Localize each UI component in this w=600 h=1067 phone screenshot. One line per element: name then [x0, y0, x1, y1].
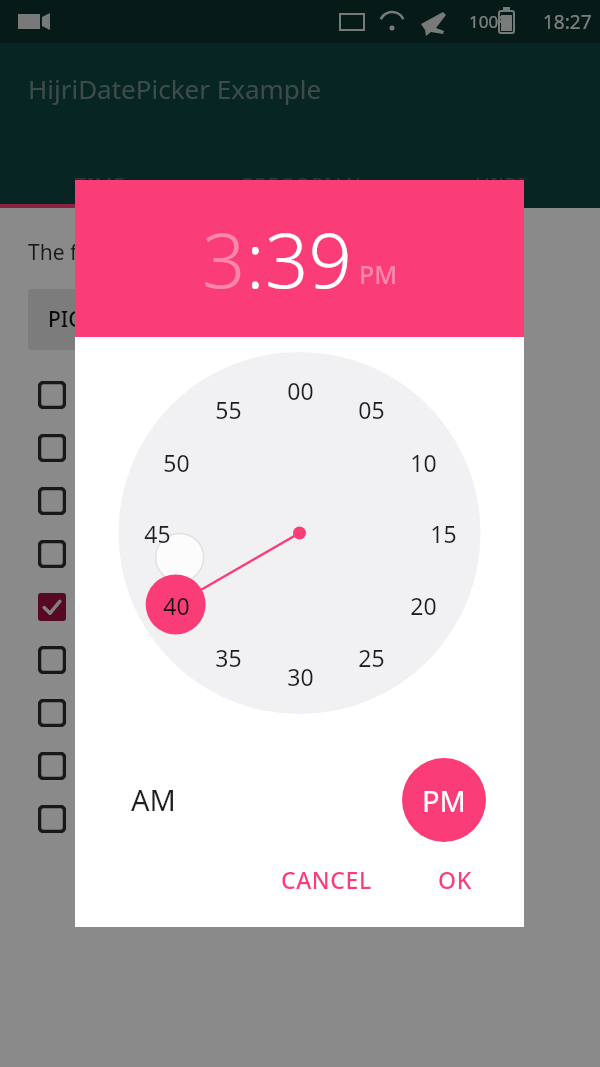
button[interactable]: PICK TIME: [28, 289, 171, 350]
button[interactable]: Option 6: [0, 633, 600, 686]
button[interactable]: 3: [202, 207, 246, 311]
staticText: Option 5: [92, 594, 170, 620]
staticText: 40: [163, 590, 190, 621]
button[interactable]: Option 9: [0, 792, 600, 845]
button[interactable]: Option 1: [0, 368, 600, 421]
button[interactable]: AM: [115, 764, 192, 835]
button[interactable]: TIME: [0, 160, 200, 208]
staticText: PICK TIME: [48, 305, 151, 334]
staticText: Option 4: [92, 541, 170, 567]
staticText: PM: [359, 257, 398, 291]
staticText: The following options...: [28, 238, 258, 267]
staticText: 05: [358, 394, 385, 425]
button[interactable]: Option 8: [0, 739, 600, 792]
staticText: 35: [215, 642, 242, 673]
button[interactable]: PM: [402, 758, 486, 842]
button[interactable]: Option 4: [0, 527, 600, 580]
staticText: OK: [438, 864, 472, 895]
staticText: GREGORIAN: [239, 171, 362, 198]
button[interactable]: CANCEL: [269, 852, 384, 907]
button[interactable]: HIJRI: [400, 160, 600, 208]
button[interactable]: Option 3: [0, 474, 600, 527]
button[interactable]: Option 5: [0, 580, 600, 633]
button[interactable]: GREGORIAN: [200, 160, 400, 208]
staticText: 50: [163, 447, 190, 478]
staticText: PM: [422, 781, 466, 820]
staticText: 55: [215, 394, 242, 425]
staticText: 25: [358, 642, 385, 673]
staticText: 39: [265, 207, 352, 311]
staticText: Option 2: [92, 435, 170, 461]
staticText: HIJRI: [475, 171, 526, 198]
staticText: 100%: [469, 10, 513, 33]
button[interactable]: Minute clock dial: [75, 337, 524, 747]
staticText: CANCEL: [281, 864, 372, 895]
staticText: 00: [287, 375, 314, 406]
staticText: AM: [131, 780, 176, 819]
button[interactable]: OK: [426, 852, 484, 907]
staticText: 10: [410, 447, 437, 478]
staticText: 15: [430, 518, 457, 549]
staticText: Option 9: [92, 806, 170, 832]
staticText: HijriDatePicker Example: [28, 71, 322, 106]
button[interactable]: PM: [359, 257, 398, 291]
staticText: 30: [287, 661, 314, 692]
staticText: TIME: [75, 171, 126, 198]
button[interactable]: Option 7: [0, 686, 600, 739]
staticText: Option 3: [92, 488, 170, 514]
staticText: :: [246, 207, 265, 311]
button[interactable]: 39: [265, 207, 352, 311]
staticText: 18:27: [543, 9, 592, 35]
staticText: 20: [410, 590, 437, 621]
staticText: 3: [202, 207, 246, 311]
button[interactable]: Option 2: [0, 421, 600, 474]
staticText: 45: [144, 518, 171, 549]
